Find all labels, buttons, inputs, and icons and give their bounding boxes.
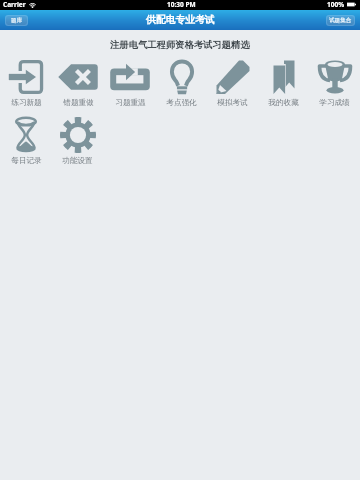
button[interactable]: 每日记录 [0, 117, 52, 166]
staticText: 每日记录 [11, 156, 42, 166]
staticText: 练习新题 [11, 98, 42, 108]
staticText: Carrier [3, 0, 26, 9]
button[interactable]: 我的收藏 [258, 59, 309, 108]
button[interactable]: 练习新题 [0, 59, 52, 108]
button[interactable]: 错题重做 [52, 59, 104, 108]
staticText: 学习成绩 [319, 98, 350, 108]
button[interactable]: 功能设置 [52, 117, 103, 166]
staticText: 习题重温 [115, 98, 146, 108]
button[interactable]: 试题集合 [327, 16, 354, 25]
staticText: 错题重做 [63, 98, 94, 108]
staticText: 功能设置 [62, 156, 93, 166]
staticText: 100% [327, 0, 345, 9]
button[interactable]: 学习成绩 [309, 59, 360, 108]
staticText: 考点强化 [166, 98, 197, 108]
button[interactable]: 习题重温 [104, 59, 156, 108]
button[interactable]: 考点强化 [156, 59, 207, 108]
staticText: 我的收藏 [268, 98, 299, 108]
staticText: 供配电专业考试 [146, 14, 215, 26]
staticText: 注册电气工程师资格考试习题精选 [110, 39, 250, 51]
staticText: 模拟考试 [217, 98, 248, 108]
staticText: 10:30 PM [167, 0, 196, 9]
button[interactable]: 模拟考试 [207, 59, 258, 108]
staticText: 题库 [11, 17, 23, 24]
button[interactable]: 题库 [6, 16, 27, 25]
staticText: 试题集合 [329, 17, 352, 24]
